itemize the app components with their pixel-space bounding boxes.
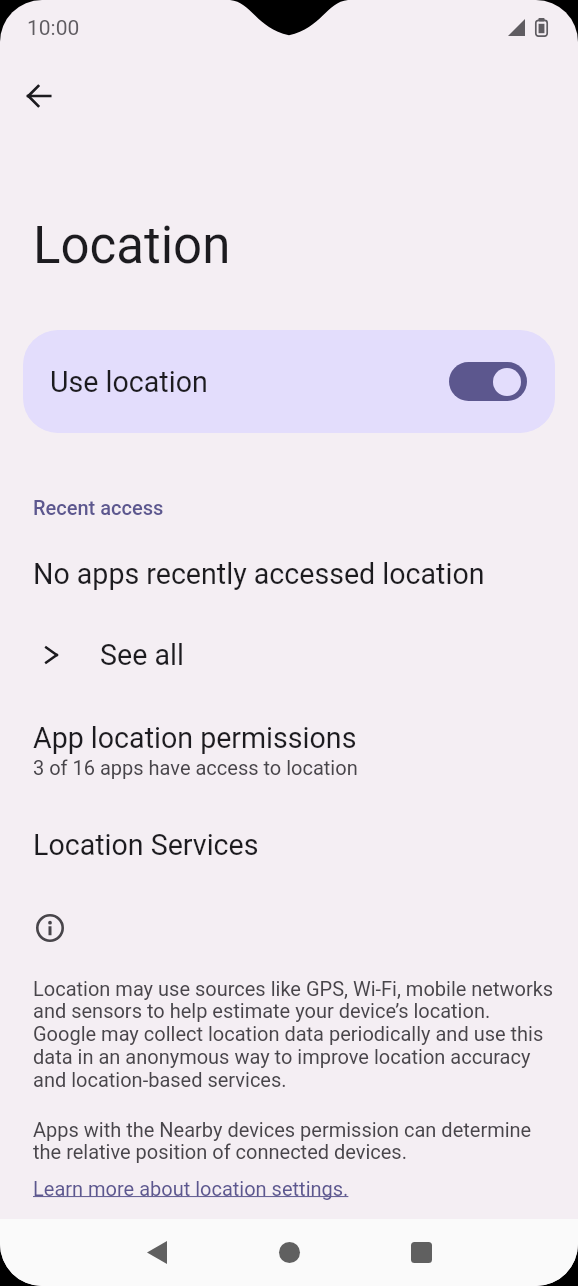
- button[interactable]: See all: [0, 634, 578, 676]
- button[interactable]: Use location: [23, 330, 555, 433]
- button[interactable]: Learn more about location settings.: [0, 1177, 349, 1200]
- staticText: Recent access: [33, 496, 164, 519]
- button[interactable]: Recents: [355, 1219, 487, 1286]
- staticText: App location permissions: [33, 721, 357, 755]
- staticText: Apps with the Nearby devices permission …: [33, 1118, 556, 1164]
- staticText: Use location: [50, 365, 208, 399]
- staticText: See all: [100, 638, 184, 672]
- staticText: No apps recently accessed location: [33, 557, 485, 591]
- staticText: Location may use sources like GPS, Wi-Fi…: [33, 977, 556, 1092]
- button[interactable]: Location Services: [0, 828, 578, 862]
- staticText: Location: [33, 216, 231, 276]
- staticText: Location Services: [33, 828, 259, 862]
- button[interactable]: Back: [15, 72, 63, 120]
- staticText: Learn more about location settings.: [33, 1177, 349, 1200]
- button[interactable]: Home: [223, 1219, 355, 1286]
- button[interactable]: Use location toggle: [449, 362, 527, 401]
- button[interactable]: Back: [91, 1219, 223, 1286]
- button[interactable]: App location permissions: [0, 721, 578, 779]
- staticText: 3 of 16 apps have access to location: [33, 756, 358, 779]
- staticText: 10:00: [27, 16, 80, 41]
